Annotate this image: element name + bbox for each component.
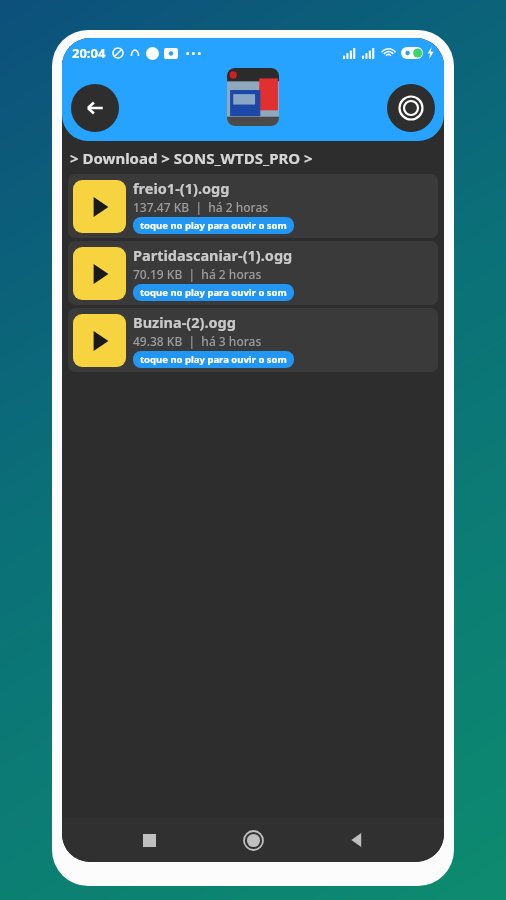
staticText: 137.47 KB | há 2 horas: [133, 199, 269, 215]
staticText: toque no play para ouvir o som: [140, 353, 287, 366]
button[interactable]: Play freio1-(1).ogg: [73, 180, 126, 233]
button[interactable]: Recents: [121, 818, 177, 862]
staticText: 70.19 KB | há 2 horas: [133, 266, 262, 282]
staticText: toque no play para ouvir o som: [140, 219, 287, 232]
staticText: 20:04: [72, 44, 106, 62]
staticText: • • •: [186, 47, 201, 59]
button[interactable]: Refresh: [387, 84, 435, 132]
button[interactable]: Back: [329, 818, 385, 862]
staticText: 49.38 KB | há 3 horas: [133, 333, 262, 349]
button[interactable]: Play Buzina-(2).ogg: [73, 314, 126, 367]
button[interactable]: Back: [71, 84, 119, 132]
staticText: Partidascaniar-(1).ogg: [133, 245, 293, 265]
button[interactable]: Play Buzina-(2).ogg: [68, 308, 438, 372]
staticText: > Download > SONS_WTDS_PRO >: [70, 148, 313, 168]
button[interactable]: Play freio1-(1).ogg: [68, 174, 438, 238]
staticText: Buzina-(2).ogg: [133, 312, 236, 332]
button[interactable]: Play Partidascaniar-(1).ogg: [73, 247, 126, 300]
button[interactable]: Home: [225, 818, 281, 862]
button[interactable]: Play Partidascaniar-(1).ogg: [68, 241, 438, 305]
staticText: toque no play para ouvir o som: [140, 286, 287, 299]
staticText: freio1-(1).ogg: [133, 178, 230, 198]
